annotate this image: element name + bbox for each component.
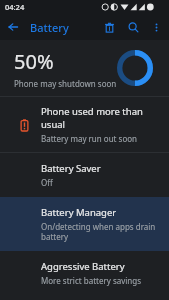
button[interactable]: Back xyxy=(0,14,26,40)
staticText: Aggressive Battery xyxy=(41,260,125,273)
staticText: 04:24 xyxy=(5,2,25,12)
button[interactable]: More options xyxy=(145,16,167,38)
staticText: Battery Manager xyxy=(41,206,117,219)
staticText: Phone used more than usual xyxy=(41,105,161,131)
staticText: 50% xyxy=(14,48,54,75)
staticText: On/detecting when apps drain battery xyxy=(41,221,161,242)
staticText: Battery xyxy=(30,20,69,35)
button[interactable]: Aggressive Battery xyxy=(0,251,169,295)
staticText: More strict battery savings xyxy=(41,275,142,286)
staticText: Off xyxy=(41,177,53,188)
button[interactable]: Phone used more than usual xyxy=(0,97,169,152)
staticText: Battery Saver xyxy=(41,162,101,175)
button[interactable]: Battery Saver xyxy=(0,153,169,197)
staticText: Phone may shutdown soon xyxy=(14,78,117,89)
button[interactable]: Delete xyxy=(97,15,121,39)
staticText: Battery may run out soon xyxy=(41,133,138,144)
button[interactable]: Battery Manager xyxy=(0,197,169,251)
button[interactable]: Search xyxy=(121,15,145,39)
